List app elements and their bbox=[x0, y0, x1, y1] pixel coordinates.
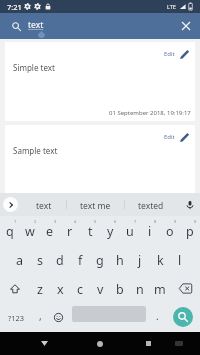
button[interactable]: . bbox=[148, 303, 166, 332]
button[interactable]: Recent apps bbox=[137, 332, 159, 355]
staticText: 9 bbox=[174, 219, 177, 224]
button[interactable]: p bbox=[180, 216, 200, 245]
staticText: 01 September 2018, 19:19:17 bbox=[109, 109, 191, 117]
staticText: j bbox=[138, 252, 142, 269]
button[interactable]: texted bbox=[124, 193, 178, 216]
button[interactable]: v bbox=[90, 274, 110, 303]
button[interactable]: t bbox=[80, 216, 100, 245]
staticText: o bbox=[166, 223, 174, 240]
staticText: 6 bbox=[114, 219, 117, 224]
staticText: m bbox=[154, 281, 166, 298]
button[interactable]: z bbox=[30, 274, 50, 303]
button[interactable]: f bbox=[70, 245, 90, 274]
button[interactable]: c bbox=[70, 274, 90, 303]
button[interactable]: Shift bbox=[0, 274, 30, 303]
button[interactable]: More suggestions bbox=[0, 193, 21, 216]
button[interactable]: Search bbox=[8, 18, 24, 34]
staticText: d bbox=[56, 252, 64, 269]
button[interactable]: Sample text bbox=[5, 125, 195, 205]
button[interactable]: Simple text bbox=[5, 42, 195, 121]
staticText: n bbox=[136, 281, 144, 298]
button[interactable]: Home bbox=[89, 332, 111, 355]
button[interactable]: ?123 bbox=[0, 303, 32, 332]
button[interactable]: Edit bbox=[164, 46, 190, 62]
button[interactable]: n bbox=[130, 274, 150, 303]
button[interactable]: b bbox=[110, 274, 130, 303]
staticText: p bbox=[186, 223, 194, 240]
button[interactable]: l bbox=[170, 245, 190, 274]
button[interactable]: y bbox=[100, 216, 120, 245]
button[interactable]: m bbox=[150, 274, 170, 303]
button[interactable]: , bbox=[31, 303, 49, 332]
button[interactable]: i bbox=[140, 216, 160, 245]
staticText: t bbox=[88, 223, 93, 240]
button[interactable]: u bbox=[120, 216, 140, 245]
staticText: g bbox=[96, 252, 104, 269]
staticText: q bbox=[6, 223, 14, 240]
button[interactable]: Change keyboard bbox=[170, 332, 188, 355]
staticText: LTE bbox=[167, 3, 176, 10]
staticText: y bbox=[107, 223, 114, 240]
staticText: 3 bbox=[54, 219, 57, 224]
button[interactable]: a bbox=[10, 245, 30, 274]
staticText: , bbox=[39, 309, 42, 323]
button[interactable]: Emoji bbox=[49, 303, 67, 332]
button[interactable]: g bbox=[90, 245, 110, 274]
staticText: x bbox=[57, 281, 64, 298]
staticText: e bbox=[46, 223, 54, 240]
staticText: 4 bbox=[74, 219, 77, 224]
staticText: text bbox=[28, 19, 44, 31]
button[interactable]: Close search bbox=[178, 18, 194, 34]
staticText: 7:21 bbox=[7, 2, 22, 12]
staticText: h bbox=[116, 252, 124, 269]
staticText: w bbox=[25, 223, 35, 240]
button[interactable]: w bbox=[20, 216, 40, 245]
staticText: text me bbox=[80, 200, 111, 212]
button[interactable]: o bbox=[160, 216, 180, 245]
button[interactable]: k bbox=[150, 245, 170, 274]
staticText: 5 bbox=[94, 219, 97, 224]
staticText: k bbox=[157, 252, 164, 269]
button[interactable]: Back bbox=[33, 332, 55, 355]
staticText: 0 bbox=[194, 219, 197, 224]
staticText: r bbox=[67, 223, 73, 240]
button[interactable]: h bbox=[110, 245, 130, 274]
staticText: b bbox=[116, 281, 124, 298]
staticText: 1 bbox=[14, 219, 17, 224]
staticText: texted bbox=[138, 200, 164, 212]
button[interactable]: e bbox=[40, 216, 60, 245]
button[interactable]: text me bbox=[66, 193, 124, 216]
staticText: 8 bbox=[154, 219, 157, 224]
button[interactable]: s bbox=[30, 245, 50, 274]
staticText: Edit bbox=[164, 50, 175, 58]
button[interactable]: text bbox=[21, 193, 66, 216]
button[interactable]: q bbox=[0, 216, 20, 245]
button[interactable]: Backspace bbox=[170, 274, 200, 303]
button[interactable]: Voice input bbox=[179, 193, 200, 216]
staticText: l bbox=[178, 252, 182, 269]
button[interactable]: d bbox=[50, 245, 70, 274]
button[interactable]: j bbox=[130, 245, 150, 274]
staticText: v bbox=[97, 281, 104, 298]
button[interactable]: x bbox=[50, 274, 70, 303]
button[interactable]: Search bbox=[173, 307, 193, 327]
button[interactable]: Edit bbox=[164, 129, 190, 145]
staticText: Sample text bbox=[13, 145, 58, 156]
staticText: 2 bbox=[34, 219, 37, 224]
staticText: i bbox=[148, 223, 152, 240]
staticText: a bbox=[16, 252, 24, 269]
staticText: z bbox=[37, 281, 43, 298]
staticText: ?123 bbox=[8, 313, 25, 323]
staticText: c bbox=[77, 281, 84, 298]
staticText: . bbox=[156, 309, 159, 323]
staticText: text bbox=[36, 200, 52, 212]
staticText: u bbox=[126, 223, 134, 240]
staticText: Edit bbox=[164, 133, 175, 141]
staticText: Simple text bbox=[13, 62, 55, 73]
staticText: 7 bbox=[134, 219, 137, 224]
button[interactable]: r bbox=[60, 216, 80, 245]
staticText: f bbox=[78, 252, 83, 269]
staticText: s bbox=[37, 252, 43, 269]
